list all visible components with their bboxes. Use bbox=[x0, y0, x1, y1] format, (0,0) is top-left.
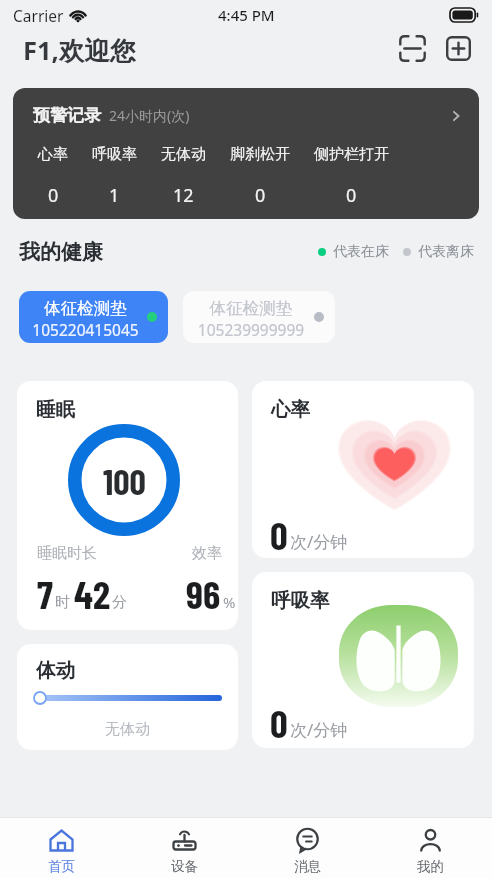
staticText: 我的健康 bbox=[19, 239, 103, 265]
staticText: 100 bbox=[103, 459, 146, 502]
button[interactable]: 呼吸率 bbox=[252, 572, 474, 748]
staticText: 105220415045 bbox=[19, 319, 160, 340]
staticText: 0 bbox=[270, 699, 288, 746]
staticText: 无体动 bbox=[161, 145, 206, 164]
staticText: 次/分钟 bbox=[290, 530, 348, 553]
staticText: 96 bbox=[186, 570, 221, 617]
staticText: 代表在床 bbox=[333, 243, 389, 261]
button[interactable]: 消息 bbox=[246, 818, 369, 878]
staticText: 0 bbox=[48, 183, 59, 208]
staticText: 侧护栏打开 bbox=[314, 145, 389, 164]
staticText: 分 bbox=[112, 593, 127, 612]
staticText: 24小时内(次) bbox=[109, 106, 190, 125]
button[interactable]: Scan bbox=[390, 26, 434, 70]
staticText: Carrier bbox=[13, 5, 64, 26]
staticText: 我的 bbox=[417, 858, 444, 875]
staticText: 7 bbox=[37, 570, 53, 617]
staticText: 12 bbox=[173, 183, 194, 208]
staticText: 睡眠 bbox=[36, 397, 75, 422]
button[interactable]: 首页 bbox=[0, 818, 123, 878]
staticText: 42 bbox=[74, 570, 110, 617]
staticText: 0 bbox=[346, 183, 357, 208]
staticText: 体征检测垫 bbox=[19, 298, 160, 319]
button[interactable]: 体动 bbox=[17, 644, 238, 750]
staticText: 脚刹松开 bbox=[230, 145, 290, 164]
staticText: 睡眠时长 bbox=[37, 544, 97, 563]
staticText: 时 bbox=[55, 593, 70, 612]
staticText: 呼吸率 bbox=[92, 145, 137, 164]
staticText: 体征检测垫 bbox=[183, 298, 327, 319]
button[interactable]: Add bbox=[436, 26, 480, 70]
staticText: % bbox=[223, 592, 236, 612]
staticText: 效率 bbox=[192, 544, 222, 563]
staticText: 次/分钟 bbox=[290, 718, 348, 741]
staticText: 设备 bbox=[171, 858, 198, 875]
staticText: 消息 bbox=[294, 858, 321, 875]
staticText: 0 bbox=[270, 511, 288, 558]
staticText: F1,欢迎您 bbox=[23, 33, 136, 68]
button[interactable]: 预警记录 bbox=[13, 88, 479, 219]
staticText: 心率 bbox=[271, 397, 310, 422]
button[interactable]: 我的 bbox=[369, 818, 492, 878]
staticText: 体动 bbox=[36, 658, 75, 683]
staticText: 1 bbox=[109, 183, 120, 208]
staticText: 预警记录 bbox=[33, 105, 101, 126]
button[interactable]: 体征检测垫 bbox=[183, 291, 335, 343]
button[interactable]: 心率 bbox=[252, 381, 474, 558]
staticText: 呼吸率 bbox=[271, 588, 330, 613]
staticText: 心率 bbox=[38, 145, 68, 164]
staticText: 首页 bbox=[48, 858, 75, 875]
button[interactable]: 体征检测垫 bbox=[19, 291, 168, 343]
staticText: 无体动 bbox=[17, 720, 238, 739]
staticText: 4:45 PM bbox=[218, 5, 275, 25]
staticText: 0 bbox=[255, 183, 266, 208]
button[interactable]: 睡眠 bbox=[17, 381, 238, 630]
staticText: 105239999999 bbox=[183, 319, 327, 340]
staticText: 代表离床 bbox=[418, 243, 474, 261]
button[interactable]: 设备 bbox=[123, 818, 246, 878]
